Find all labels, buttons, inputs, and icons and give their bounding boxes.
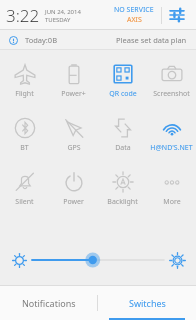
staticText: AXIS — [127, 15, 142, 25]
button[interactable]: Switches — [98, 286, 196, 320]
staticText: 3:22 — [6, 4, 40, 27]
button[interactable]: BT — [0, 108, 49, 162]
button[interactable]: Power+ — [49, 54, 98, 108]
staticText: BT — [20, 143, 29, 153]
button[interactable]: Flight — [0, 54, 49, 108]
staticText: Flight — [15, 89, 34, 99]
button[interactable]: Power — [49, 162, 98, 216]
staticText: GPS — [67, 143, 81, 153]
staticText: Power+ — [61, 89, 86, 99]
button[interactable]: Settings — [162, 0, 192, 30]
button[interactable]: GPS — [49, 108, 98, 162]
button[interactable]: Lower brightness — [6, 247, 32, 273]
button[interactable]: Today:0B — [0, 30, 196, 50]
staticText: Silent — [15, 197, 34, 207]
staticText: More — [163, 197, 181, 207]
staticText: Switches — [129, 297, 166, 309]
staticText: Backlight — [107, 197, 138, 207]
staticText: NO SERVICE — [114, 5, 154, 15]
staticText: TUESDAY — [45, 16, 71, 24]
staticText: QR code — [109, 89, 137, 99]
staticText: Data — [115, 143, 131, 153]
staticText: Please set data plan — [116, 35, 187, 45]
button[interactable] — [32, 249, 164, 271]
button[interactable]: Notifications — [0, 286, 97, 320]
staticText: Today:0B — [25, 35, 58, 45]
staticText: Power — [63, 197, 84, 207]
staticText: Notifications — [22, 297, 76, 309]
staticText: Screenshot — [153, 89, 190, 99]
button[interactable]: QR code — [98, 54, 147, 108]
staticText: JUN 24, 2014 — [45, 8, 81, 16]
button[interactable]: Data — [98, 108, 147, 162]
button[interactable]: Screenshot — [147, 54, 196, 108]
button[interactable]: Backlight — [98, 162, 147, 216]
button[interactable]: Silent — [0, 162, 49, 216]
button[interactable]: H@ND'S.NET — [147, 108, 196, 162]
button[interactable]: Auto brightness — [164, 247, 190, 273]
button[interactable]: More — [147, 162, 196, 216]
staticText: H@ND'S.NET — [150, 143, 193, 153]
